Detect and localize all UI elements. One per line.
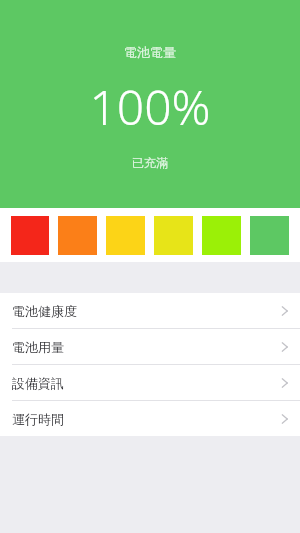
button[interactable]: 電池用量 [0,329,300,364]
staticText: 設備資訊 [12,375,64,391]
staticText: 電池用量 [12,339,64,355]
button[interactable]: 電池健康度 [0,293,300,328]
button[interactable]: 運行時間 [0,401,300,436]
staticText: 已充滿 [132,155,168,170]
button[interactable]: 設備資訊 [0,365,300,400]
staticText: 電池電量 [124,44,176,60]
staticText: 運行時間 [12,411,64,427]
staticText: 電池健康度 [12,303,77,319]
staticText: 100% [89,74,211,139]
